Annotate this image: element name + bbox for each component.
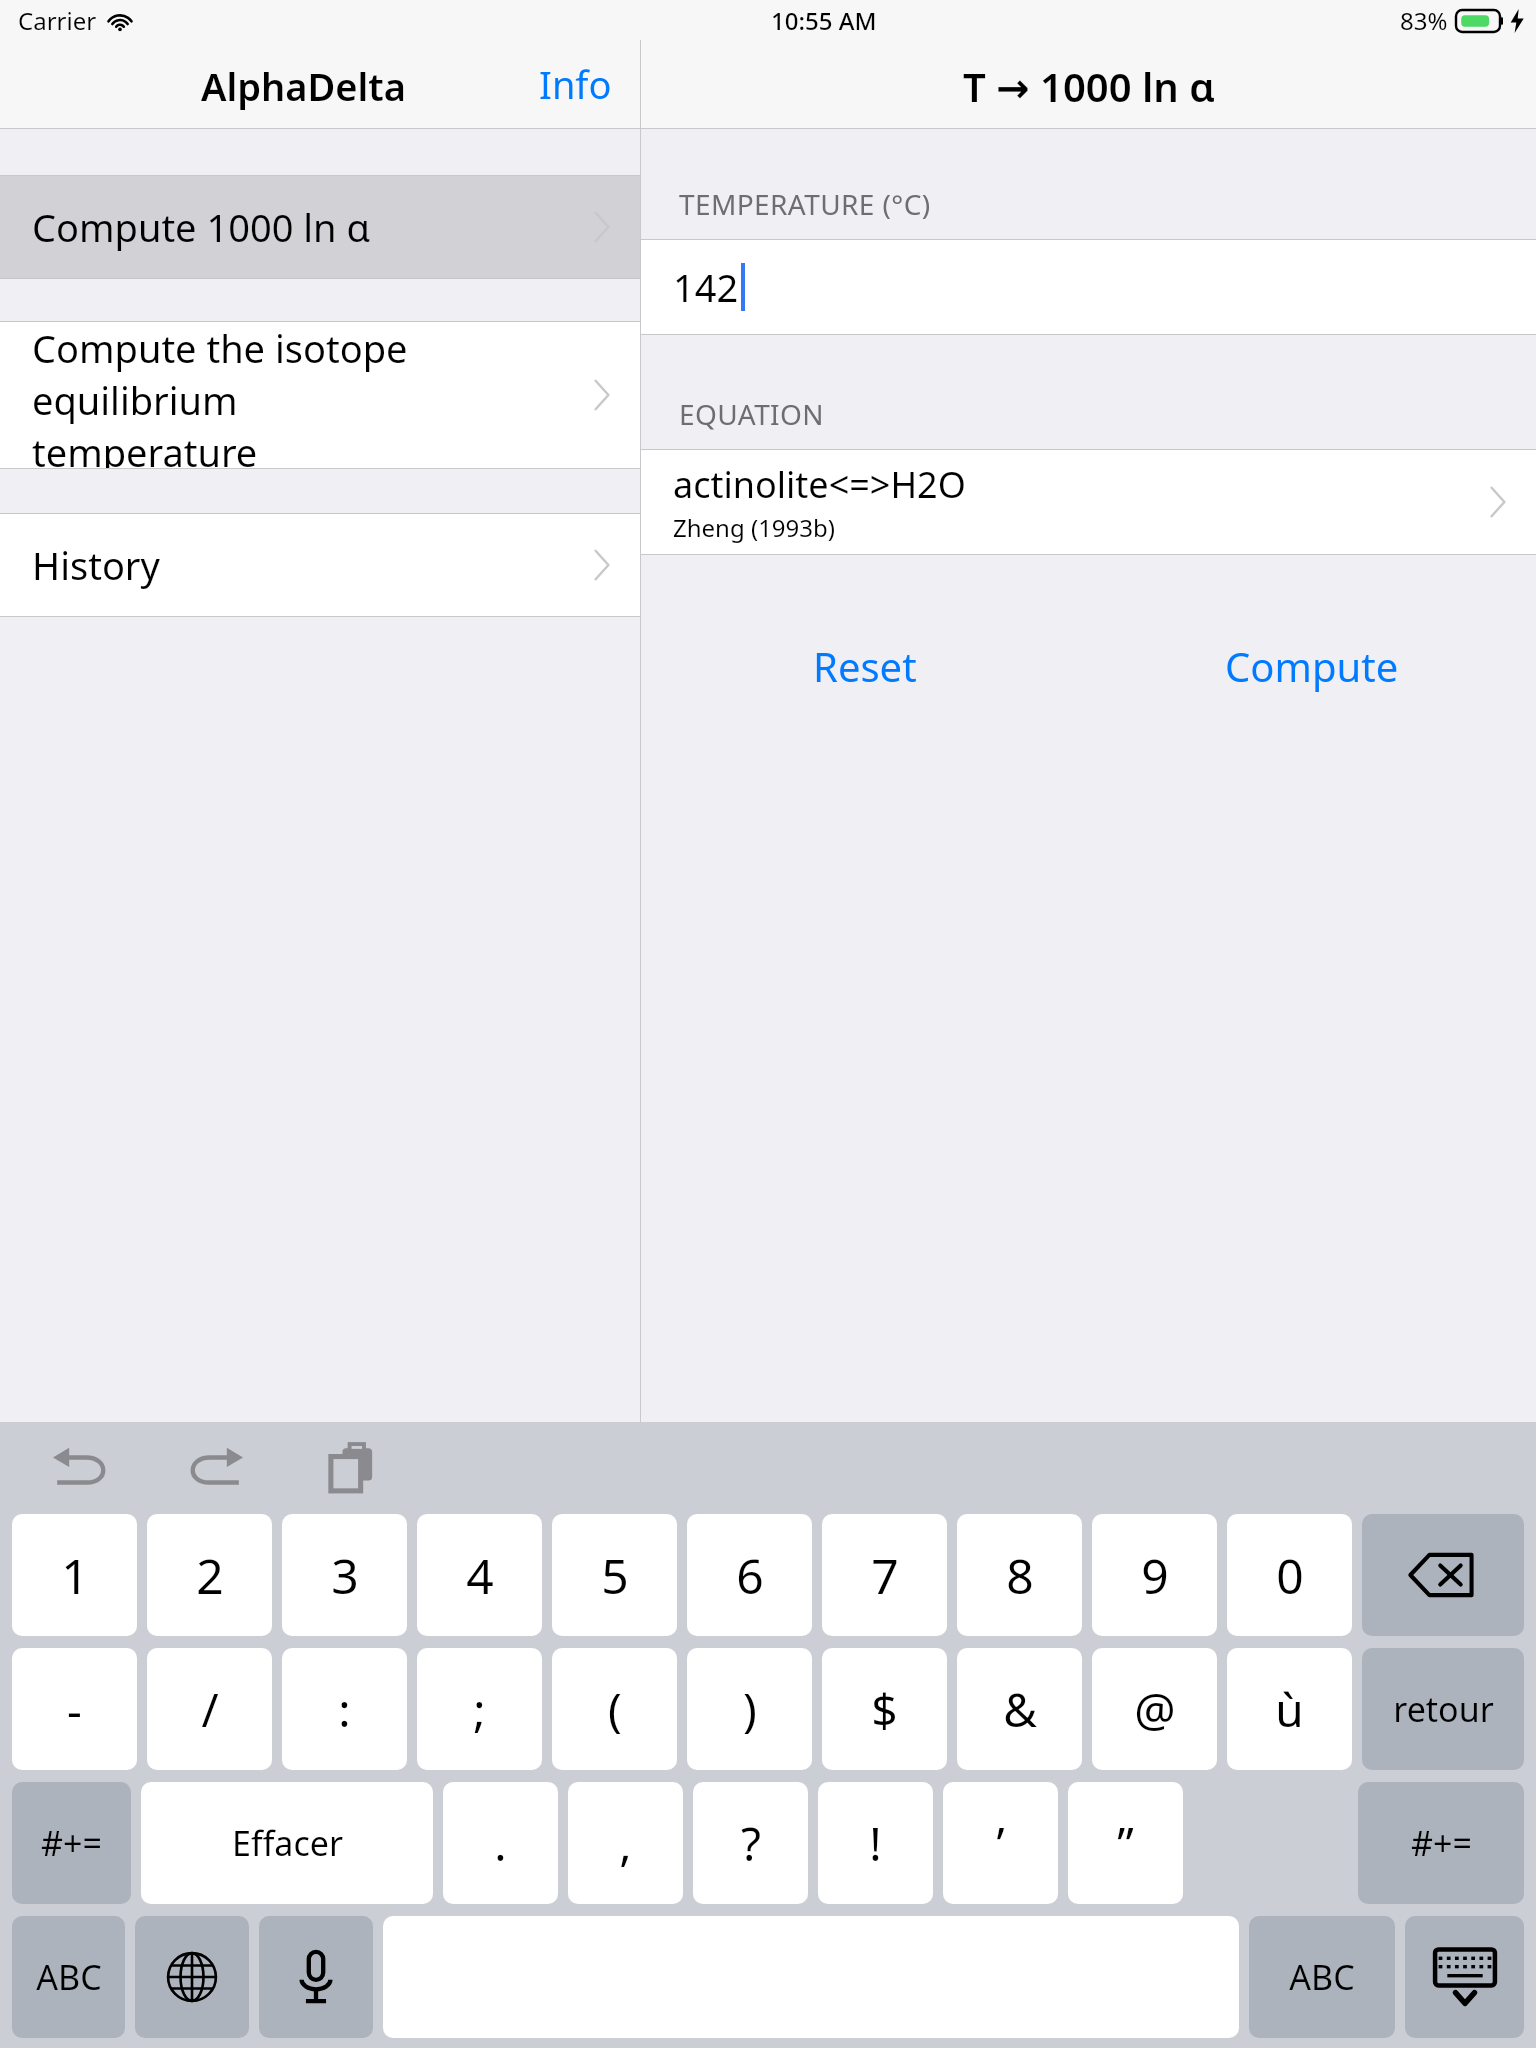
button[interactable]: Hide keyboard — [1405, 1916, 1524, 2038]
button[interactable]: Paste — [308, 1424, 396, 1512]
button[interactable]: 4 — [417, 1514, 542, 1636]
staticText: 142 — [673, 261, 739, 313]
button[interactable]: & — [957, 1648, 1082, 1770]
button[interactable]: ù — [1227, 1648, 1352, 1770]
staticText: AlphaDelta — [201, 60, 407, 112]
staticText: ’ — [996, 1812, 1005, 1875]
staticText: EQUATION — [679, 395, 824, 433]
button[interactable]: 1 — [12, 1514, 137, 1636]
button[interactable]: 3 — [282, 1514, 407, 1636]
button[interactable]: . — [443, 1782, 558, 1904]
staticText: TEMPERATURE (°C) — [679, 185, 931, 223]
button[interactable]: 8 — [957, 1514, 1082, 1636]
button[interactable]: 0 — [1227, 1514, 1352, 1636]
button[interactable]: retour — [1362, 1648, 1524, 1770]
button[interactable]: $ — [822, 1648, 947, 1770]
staticText: 6 — [736, 1543, 764, 1608]
staticText: Effacer — [232, 1820, 343, 1866]
staticText: Compute the isotope equilibrium — [32, 322, 592, 426]
button[interactable]: #+= — [12, 1782, 131, 1904]
staticText: 10:55 AM — [771, 4, 877, 37]
button[interactable]: 7 — [822, 1514, 947, 1636]
staticText: ù — [1275, 1678, 1304, 1741]
button[interactable]: Redo — [172, 1424, 260, 1512]
button[interactable]: Backspace — [1362, 1514, 1524, 1636]
staticText: 8 — [1006, 1543, 1034, 1608]
staticText: 4 — [466, 1543, 494, 1608]
button[interactable]: Reset — [773, 623, 957, 709]
button[interactable]: 142 — [641, 240, 1536, 334]
staticText: 2 — [196, 1543, 224, 1608]
button[interactable]: Dictate — [259, 1916, 373, 2038]
button[interactable]: Compute 1000 ln α — [0, 176, 640, 278]
staticText: History — [32, 539, 592, 591]
staticText: ” — [1117, 1812, 1134, 1875]
button[interactable]: 9 — [1092, 1514, 1217, 1636]
staticText: #+= — [41, 1820, 102, 1866]
staticText: temperature — [32, 426, 258, 468]
staticText: retour — [1393, 1686, 1494, 1732]
staticText: ; — [473, 1678, 486, 1741]
button[interactable]: @ — [1092, 1648, 1217, 1770]
staticText: 0 — [1276, 1543, 1304, 1608]
staticText: Compute — [1225, 639, 1399, 693]
button[interactable]: 2 — [147, 1514, 272, 1636]
staticText: Reset — [813, 639, 917, 693]
button[interactable]: #+= — [1358, 1782, 1524, 1904]
staticText: ( — [608, 1678, 622, 1741]
staticText: ! — [869, 1812, 882, 1875]
button[interactable]: Info — [511, 42, 640, 126]
staticText: 83% — [1400, 4, 1448, 37]
staticText: ABC — [1289, 1954, 1355, 2000]
button[interactable]: : — [282, 1648, 407, 1770]
button[interactable]: Compute the isotope equilibrium — [0, 322, 640, 468]
button[interactable]: ! — [818, 1782, 933, 1904]
staticText: ? — [741, 1812, 761, 1875]
button[interactable]: actinolite<=>H2O — [641, 450, 1536, 554]
button[interactable]: Effacer — [141, 1782, 433, 1904]
staticText: , — [619, 1812, 632, 1875]
staticText: 5 — [601, 1543, 629, 1608]
button[interactable]: 6 — [687, 1514, 812, 1636]
staticText: @ — [1134, 1678, 1176, 1741]
button[interactable]: ) — [687, 1648, 812, 1770]
button[interactable]: ; — [417, 1648, 542, 1770]
staticText: : — [338, 1678, 351, 1741]
button[interactable]: Compute — [1185, 623, 1439, 709]
staticText: $ — [871, 1678, 898, 1741]
staticText: 3 — [331, 1543, 359, 1608]
staticText: ABC — [36, 1954, 102, 2000]
button[interactable]: ” — [1068, 1782, 1183, 1904]
staticText: Info — [539, 58, 612, 110]
button[interactable]: ’ — [943, 1782, 1058, 1904]
button[interactable]: Change keyboard — [135, 1916, 249, 2038]
staticText: Zheng (1993b) — [673, 511, 835, 544]
staticText: Compute 1000 ln α — [32, 201, 592, 253]
button[interactable]: ABC — [12, 1916, 125, 2038]
staticText: Carrier — [18, 4, 97, 37]
staticText: . — [494, 1812, 507, 1875]
button[interactable]: ( — [552, 1648, 677, 1770]
staticText: 7 — [871, 1543, 899, 1608]
button[interactable]: , — [568, 1782, 683, 1904]
button[interactable]: History — [0, 514, 640, 616]
staticText: actinolite<=>H2O — [673, 460, 966, 509]
staticText: & — [1003, 1678, 1037, 1741]
button[interactable]: ABC — [1249, 1916, 1395, 2038]
button[interactable]: Undo — [36, 1424, 124, 1512]
staticText: #+= — [1411, 1820, 1472, 1866]
staticText: ) — [743, 1678, 757, 1741]
staticText: 9 — [1141, 1543, 1169, 1608]
staticText: 1 — [61, 1543, 89, 1608]
staticText: T → 1000 ln α — [963, 59, 1215, 113]
button[interactable]: - — [12, 1648, 137, 1770]
staticText: - — [67, 1678, 82, 1741]
button[interactable]: 5 — [552, 1514, 677, 1636]
button[interactable]: / — [147, 1648, 272, 1770]
staticText: / — [201, 1678, 219, 1741]
button[interactable]: ? — [693, 1782, 808, 1904]
